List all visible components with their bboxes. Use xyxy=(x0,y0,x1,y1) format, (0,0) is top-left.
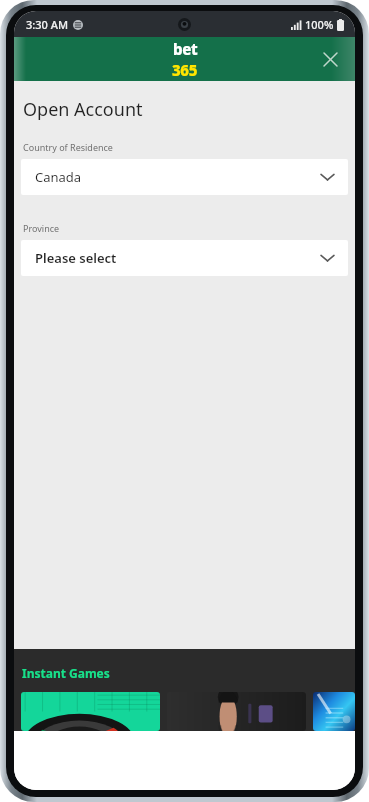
button[interactable]: Please select xyxy=(21,240,348,276)
button[interactable]: Live game show xyxy=(167,692,306,731)
staticText: 365 xyxy=(172,60,198,79)
button[interactable]: Roulette game xyxy=(21,692,160,731)
staticText: Canada xyxy=(35,168,82,186)
button[interactable]: Canada xyxy=(21,159,348,195)
staticText: 100% xyxy=(305,17,334,32)
staticText: Open Account xyxy=(23,97,143,122)
staticText: bet xyxy=(173,39,198,59)
staticText: Please select xyxy=(35,249,117,267)
button[interactable]: Close xyxy=(313,42,347,76)
button[interactable]: Instant Games xyxy=(22,665,110,681)
button[interactable]: Instant game xyxy=(313,692,355,731)
staticText: 3:30 AM xyxy=(26,17,69,32)
staticText: Country of Residence xyxy=(23,141,113,153)
staticText: Province xyxy=(23,222,60,234)
button[interactable]: bet365 home xyxy=(166,37,204,81)
